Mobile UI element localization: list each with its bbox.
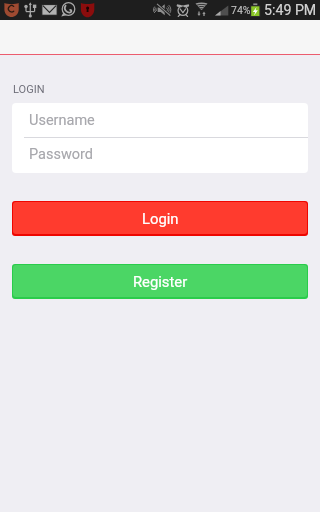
staticText: Register (133, 273, 188, 290)
button[interactable]: Register (12, 264, 308, 299)
staticText: Password (29, 146, 94, 163)
button[interactable]: Username (12, 103, 308, 137)
staticText: 74% (231, 4, 251, 16)
staticText: LOGIN (13, 83, 45, 96)
button[interactable]: Login (12, 201, 308, 236)
staticText: Username (29, 112, 95, 129)
staticText: Login (142, 210, 179, 227)
staticText: 5:49 PM (264, 2, 317, 19)
button[interactable]: Password (12, 138, 308, 173)
